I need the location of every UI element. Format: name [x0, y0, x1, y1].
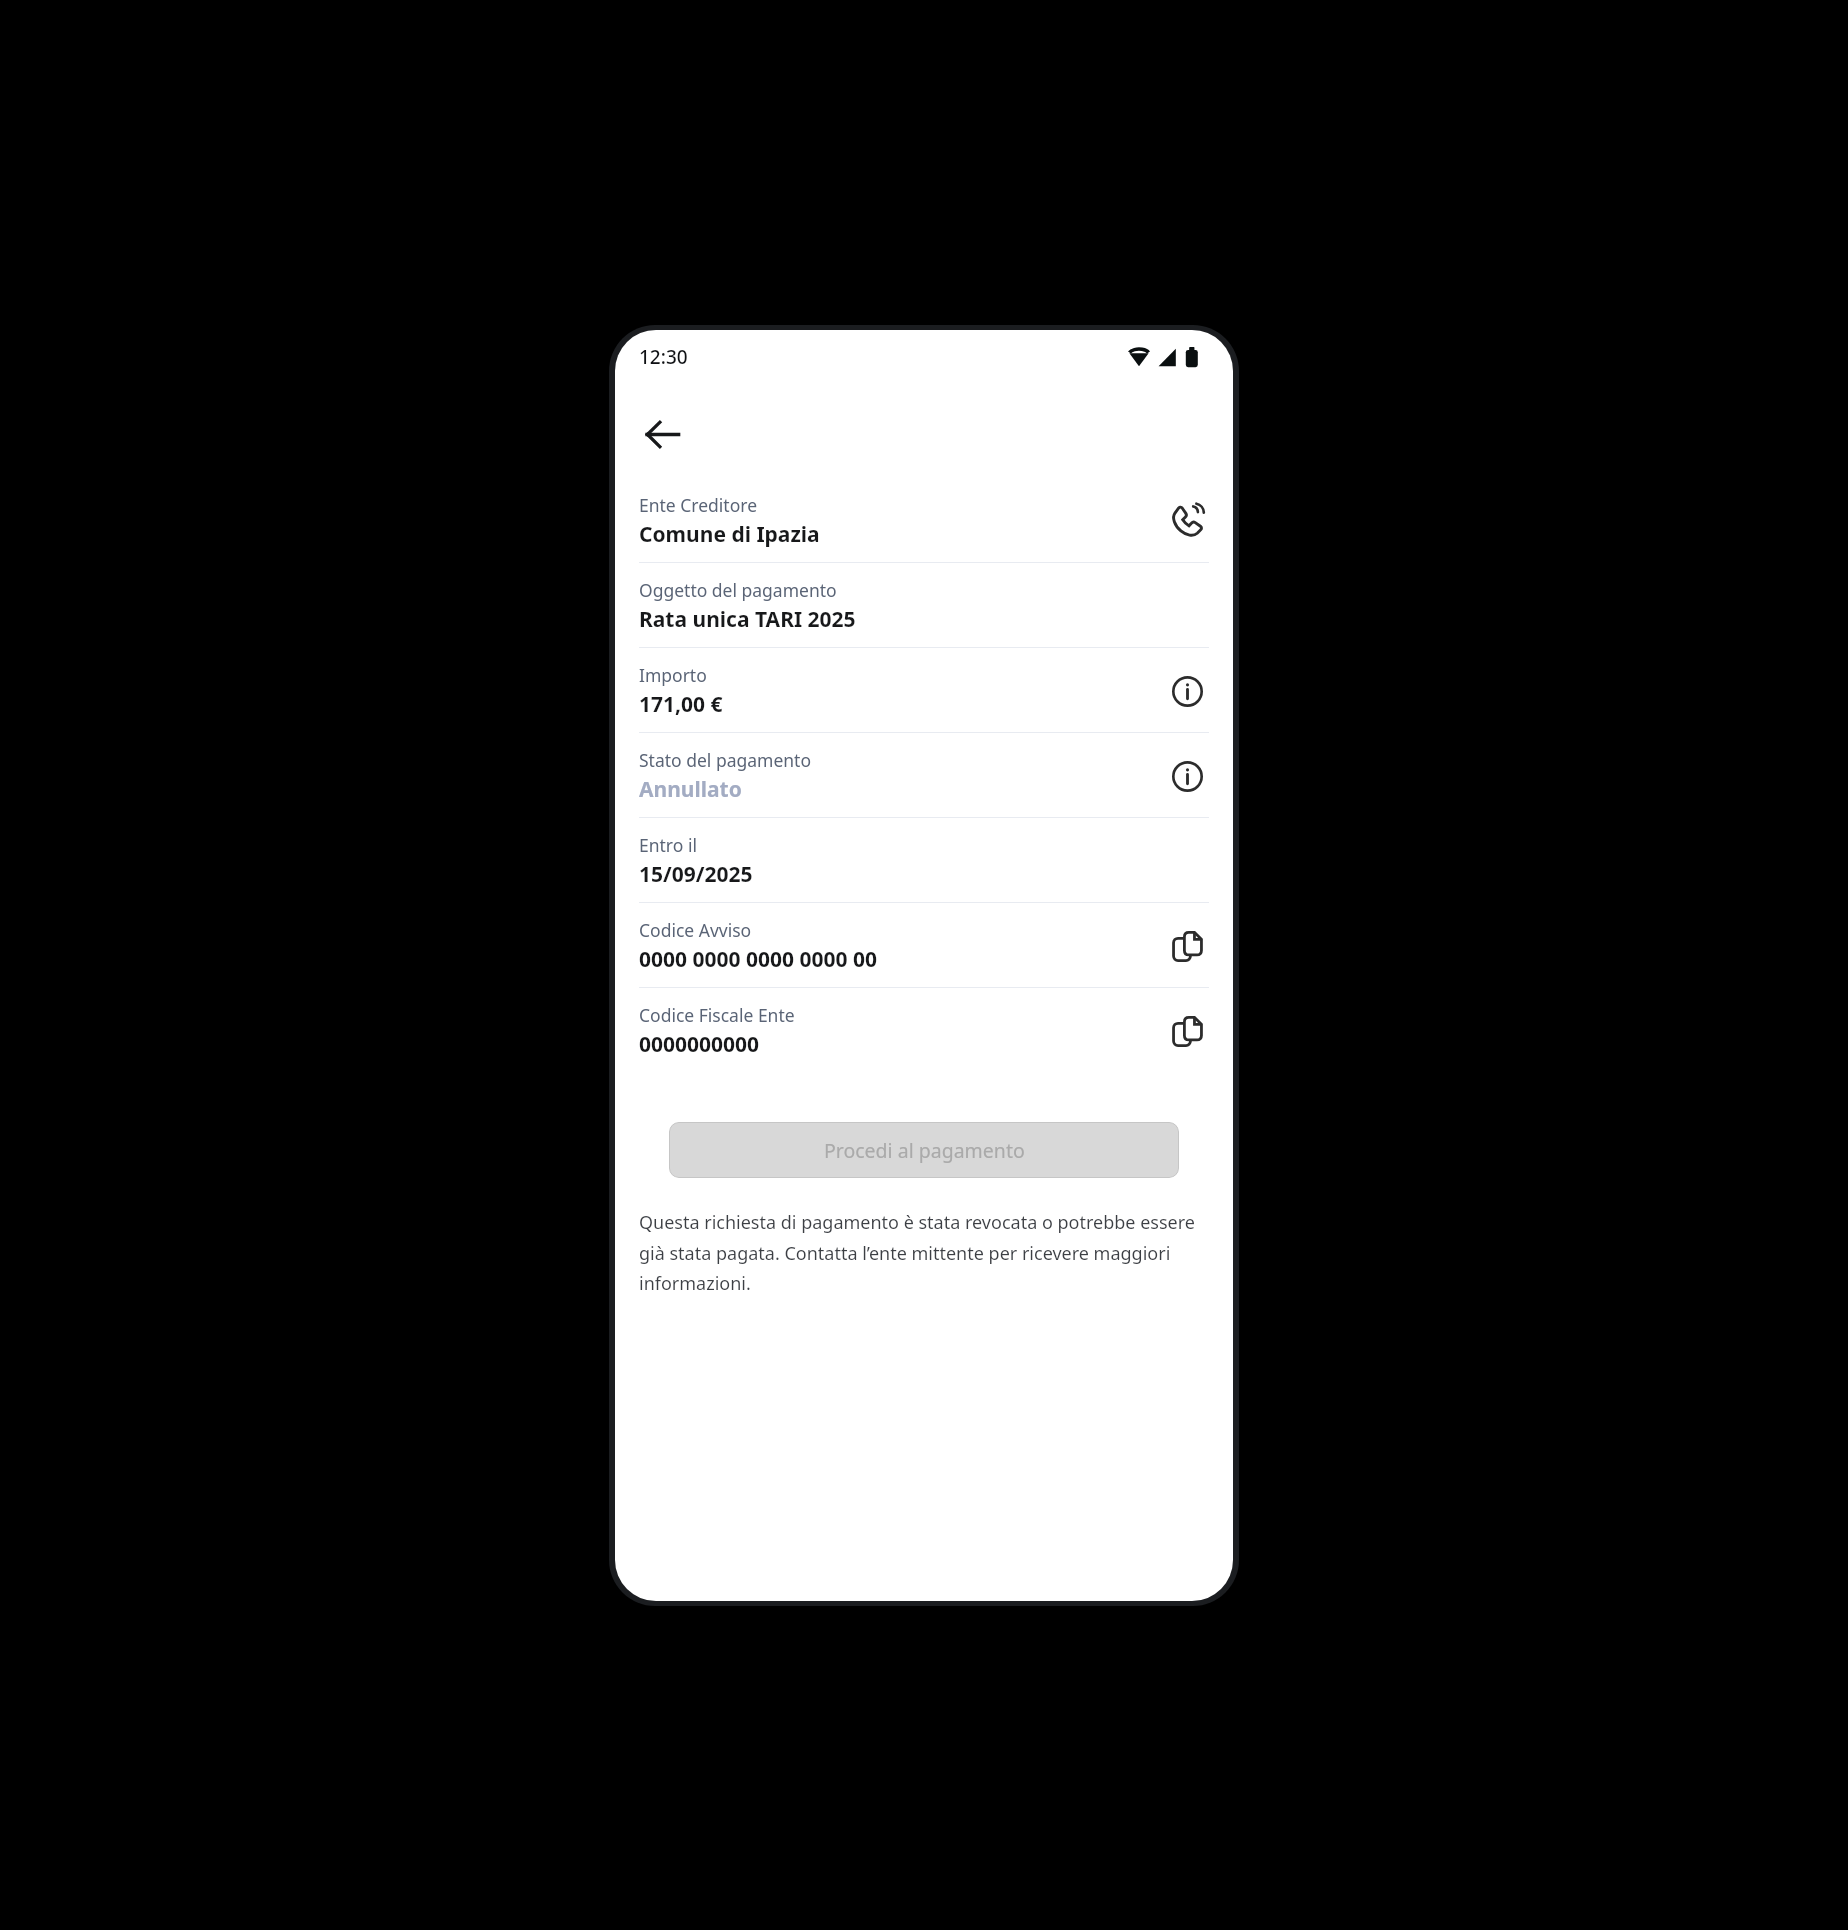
staticText: Annullato	[639, 775, 742, 804]
button[interactable]: Copy	[1165, 1009, 1209, 1053]
staticText: Procedi al pagamento	[824, 1137, 1025, 1164]
button[interactable]: Stato del pagamento	[639, 733, 1209, 817]
button[interactable]: Entro il	[639, 818, 1209, 902]
button[interactable]: Info	[1165, 754, 1209, 798]
button[interactable]: Importo	[639, 648, 1209, 732]
staticText: 12:30	[639, 344, 688, 370]
staticText: 0000000000	[639, 1030, 760, 1059]
staticText: Oggetto del pagamento	[639, 578, 837, 602]
staticText: Ente Creditore	[639, 493, 758, 517]
staticText: Stato del pagamento	[639, 748, 812, 772]
staticText: 171,00 €	[639, 690, 723, 719]
button[interactable]: Back	[636, 408, 688, 460]
staticText: Codice Avviso	[639, 918, 752, 942]
staticText: Entro il	[639, 833, 697, 857]
button[interactable]: Copy	[1165, 924, 1209, 968]
staticText: Rata unica TARI 2025	[639, 605, 856, 634]
button[interactable]: Codice Fiscale Ente	[639, 988, 1209, 1072]
button[interactable]: Call	[1165, 499, 1209, 543]
staticText: 15/09/2025	[639, 860, 753, 889]
button[interactable]: Oggetto del pagamento	[639, 563, 1209, 647]
staticText: Questa richiesta di pagamento è stata re…	[639, 1210, 1195, 1295]
staticText: Codice Fiscale Ente	[639, 1003, 795, 1027]
staticText: 0000 0000 0000 0000 00	[639, 945, 878, 974]
button[interactable]: Codice Avviso	[639, 903, 1209, 987]
staticText: Comune di Ipazia	[639, 520, 820, 549]
button[interactable]: Procedi al pagamento	[669, 1122, 1179, 1178]
button[interactable]: Info	[1165, 669, 1209, 713]
staticText: Importo	[639, 663, 707, 687]
button[interactable]: Ente Creditore	[639, 478, 1209, 562]
